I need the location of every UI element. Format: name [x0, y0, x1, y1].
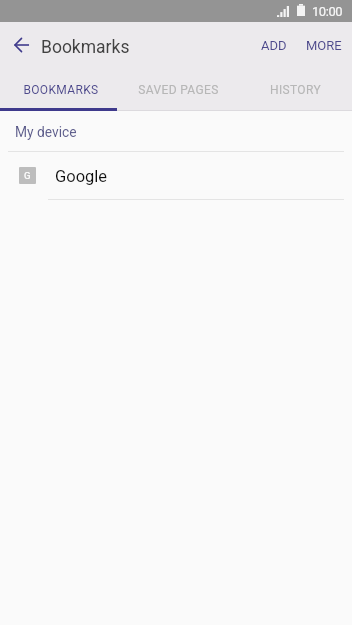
- staticText: My device: [15, 124, 77, 140]
- staticText: G: [24, 170, 31, 181]
- button[interactable]: MORE: [295, 30, 352, 61]
- other: Signal strength: [277, 6, 289, 17]
- button[interactable]: G: [0, 152, 352, 200]
- staticText: Google: [55, 167, 108, 186]
- staticText: HISTORY: [270, 83, 321, 97]
- button[interactable]: ADD: [249, 30, 295, 61]
- other: Battery: [297, 4, 305, 16]
- button[interactable]: BOOKMARKS: [0, 68, 118, 111]
- staticText: BOOKMARKS: [23, 83, 99, 97]
- button[interactable]: HISTORY: [235, 68, 352, 111]
- staticText: MORE: [306, 38, 342, 53]
- staticText: Bookmarks: [41, 37, 130, 58]
- button[interactable]: Back: [4, 27, 40, 63]
- staticText: ADD: [261, 38, 287, 53]
- staticText: SAVED PAGES: [138, 83, 219, 97]
- button[interactable]: SAVED PAGES: [118, 68, 235, 111]
- staticText: 10:00: [312, 4, 343, 19]
